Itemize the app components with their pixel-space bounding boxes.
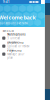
button[interactable]: Payments	[0, 50, 41, 58]
staticText: SERVICES	[2, 29, 13, 33]
staticText: 3 unread messages	[7, 36, 20, 44]
button[interactable]: Documents	[0, 42, 41, 50]
staticText: Payments	[7, 49, 21, 52]
staticText: Documents	[7, 41, 23, 44]
staticText: Notifications	[7, 33, 25, 36]
button[interactable]: Notifications	[0, 34, 41, 42]
staticText: Manage your plan	[7, 52, 24, 60]
staticText: Upload or review files	[7, 44, 29, 52]
staticText: Your account overview	[0, 21, 28, 25]
staticText: Welcome back	[0, 14, 36, 21]
staticText: 9:41	[3, 0, 10, 4]
